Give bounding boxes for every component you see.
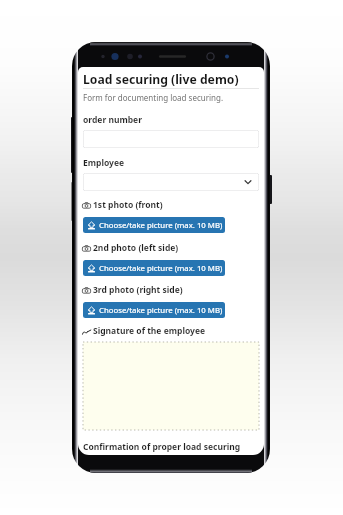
- button[interactable]: [83, 173, 259, 191]
- staticText: Choose/take picture (max. 10 MB): [99, 263, 223, 274]
- staticText: Signature of the employee: [93, 325, 206, 337]
- button[interactable]: Signature pad: [83, 342, 259, 430]
- button[interactable]: Choose/take picture (max. 10 MB): [83, 217, 225, 233]
- staticText: Employee: [83, 157, 125, 169]
- staticText: Form for documenting load securing.: [83, 92, 224, 103]
- button[interactable]: [83, 130, 259, 148]
- staticText: 2nd photo (left side): [93, 242, 179, 254]
- staticText: Choose/take picture (max. 10 MB): [99, 305, 223, 316]
- staticText: 1st photo (front): [93, 199, 163, 211]
- staticText: Load securing (live demo): [83, 71, 239, 88]
- staticText: order number: [83, 114, 142, 126]
- staticText: Confirmation of proper load securing: [83, 441, 241, 453]
- staticText: Choose/take picture (max. 10 MB): [99, 220, 223, 231]
- staticText: 3rd photo (right side): [93, 284, 183, 296]
- button[interactable]: Choose/take picture (max. 10 MB): [83, 302, 225, 318]
- button[interactable]: Choose/take picture (max. 10 MB): [83, 260, 225, 276]
